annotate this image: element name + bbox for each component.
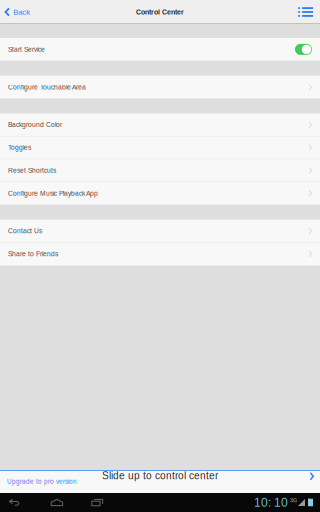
button[interactable]: Configure Music Playback App <box>0 182 320 205</box>
staticText: Back <box>13 8 30 16</box>
staticText: Background Color <box>8 121 62 128</box>
staticText: Upgrade to pro version <box>7 478 77 485</box>
button[interactable]: Recent apps <box>83 494 112 511</box>
staticText: Reset Shortcuts <box>8 167 56 174</box>
button[interactable]: List options <box>290 0 320 23</box>
button[interactable]: Slide up to control center <box>0 470 320 493</box>
staticText: Share to Friends <box>8 250 58 258</box>
button[interactable]: Configure Touchable Area <box>0 76 320 99</box>
button[interactable]: Background Color <box>0 114 320 136</box>
button[interactable]: Home <box>43 494 71 511</box>
button[interactable]: Back <box>0 494 29 511</box>
button[interactable]: Contact Us <box>0 220 320 243</box>
button[interactable]: Back <box>0 0 38 23</box>
staticText: Configure Touchable Area <box>8 83 86 91</box>
staticText: Configure Music Playback App <box>8 190 98 197</box>
button[interactable]: Upgrade to pro version <box>0 475 81 488</box>
button[interactable]: Toggles <box>0 136 320 159</box>
staticText: Control Center <box>136 8 184 16</box>
staticText: Slide up to control center <box>102 470 218 481</box>
staticText: Start Service <box>8 46 45 53</box>
staticText: 3G <box>290 497 297 503</box>
button[interactable]: Reset Shortcuts <box>0 159 320 182</box>
button[interactable]: Start Service <box>0 38 320 61</box>
staticText: Contact Us <box>8 227 42 235</box>
staticText: 10: 10 <box>254 496 288 509</box>
staticText: Toggles <box>8 144 31 151</box>
button[interactable]: Share to Friends <box>0 243 320 265</box>
